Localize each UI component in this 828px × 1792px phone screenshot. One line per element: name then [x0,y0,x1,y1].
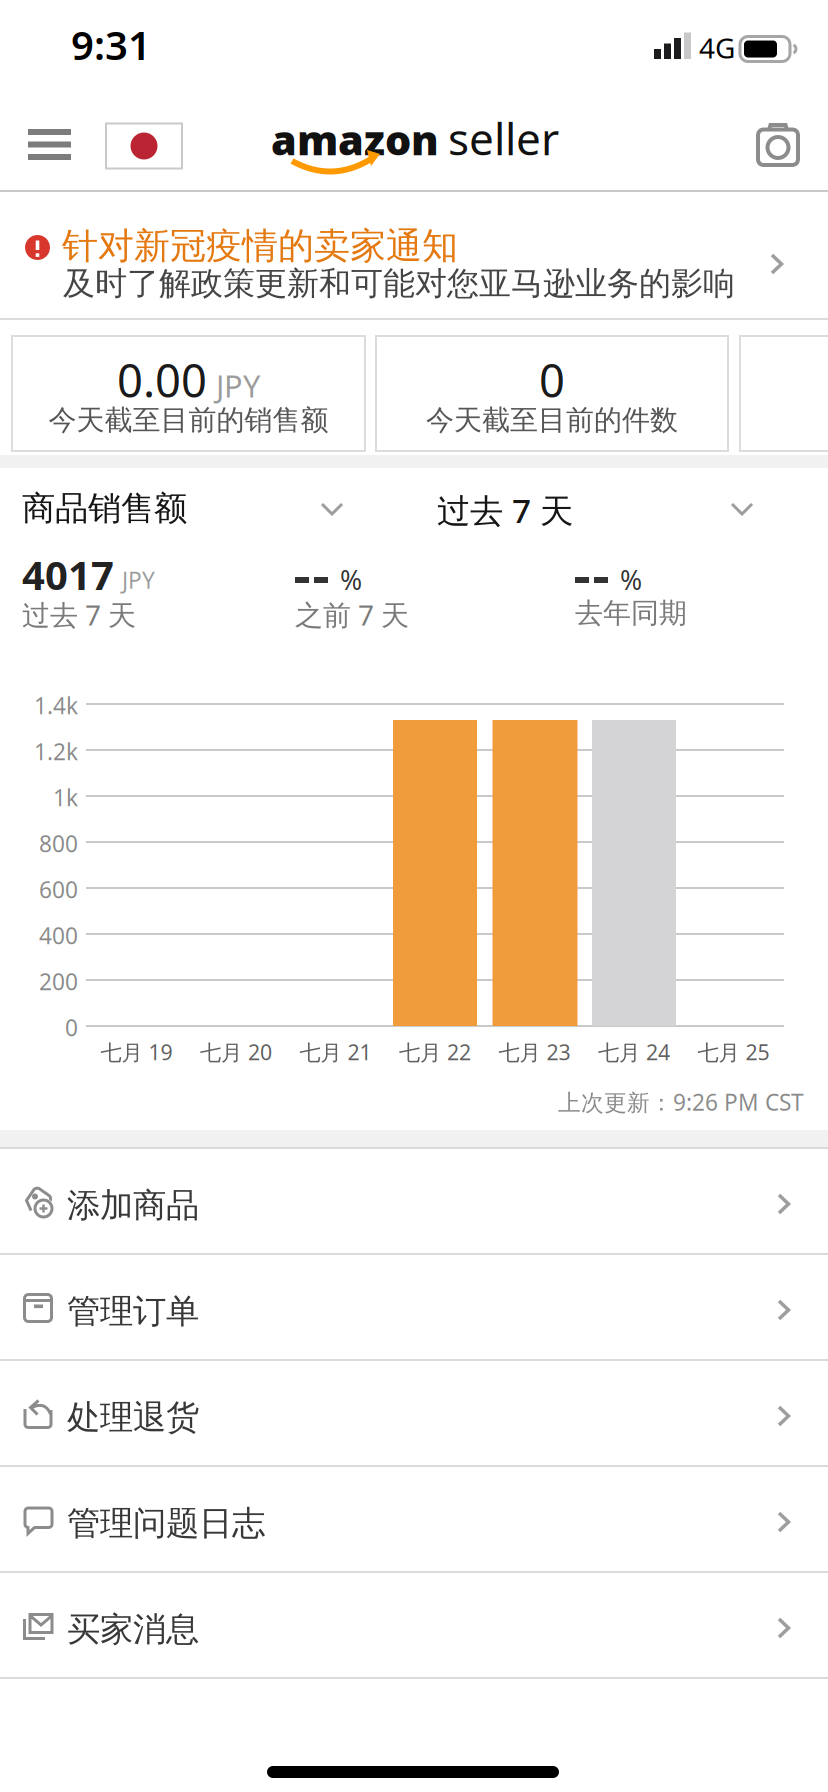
staticText: 0 [539,350,565,410]
button[interactable] [740,336,828,451]
staticText: 1.4k [34,690,78,720]
staticText: 买家消息 [67,1609,199,1650]
staticText: 4G [699,29,735,66]
staticText: 600 [39,874,78,904]
staticText: 七月 21 [299,1038,371,1066]
staticText: 添加商品 [67,1185,199,1226]
button[interactable]: 0 [376,336,728,451]
staticText: 七月 25 [697,1038,769,1066]
staticText: 今天截至目前的销售额 [48,403,328,437]
button[interactable]: 过去 7 天 [437,480,757,536]
staticText: % [340,562,362,597]
staticText: 上次更新：9:26 PM CST [558,1087,804,1117]
button[interactable]: 管理订单 [0,1255,828,1359]
staticText: 800 [39,828,78,858]
staticText: amazon [271,112,439,167]
staticText: 9:31 [71,18,151,71]
staticText: 0.00 [117,350,207,410]
button[interactable] [750,117,806,173]
staticText: 管理订单 [67,1291,199,1332]
staticText: seller [448,109,559,167]
staticText: JPY [216,365,260,406]
staticText: 七月 19 [100,1038,172,1066]
staticText: 1k [53,782,78,812]
staticText: 过去 7 天 [437,488,573,532]
staticText: 今天截至目前的件数 [426,403,678,437]
staticText: 0 [65,1012,78,1042]
button[interactable]: 商品销售额 [22,480,352,536]
button[interactable] [28,129,71,160]
staticText: 及时了解政策更新和可能对您亚马逊业务的影响 [63,264,735,303]
staticText: 七月 23 [498,1038,570,1066]
staticText: 针对新冠疫情的卖家通知 [62,224,458,268]
button[interactable]: 管理问题日志 [0,1467,828,1571]
staticText: % [620,562,642,597]
button[interactable]: 0.00 [12,336,365,451]
button[interactable]: 买家消息 [0,1573,828,1677]
staticText: 400 [39,920,78,950]
staticText: 七月 24 [598,1038,670,1066]
staticText: 管理问题日志 [67,1503,265,1544]
button[interactable] [106,123,182,168]
button[interactable]: 添加商品 [0,1149,828,1253]
staticText: 七月 22 [399,1038,471,1066]
staticText: JPY [122,565,155,595]
staticText: 去年同期 [575,596,687,630]
staticText: 1.2k [34,736,78,766]
staticText: 商品销售额 [22,488,187,529]
staticText: 200 [39,966,78,996]
staticText: 之前 7 天 [295,596,409,633]
staticText: 七月 20 [200,1038,272,1066]
staticText: 过去 7 天 [22,596,136,633]
staticText: 4017 [22,548,114,601]
button[interactable]: 针对新冠疫情的卖家通知 [0,192,828,318]
staticText: 处理退货 [67,1397,199,1438]
button[interactable]: 处理退货 [0,1361,828,1465]
